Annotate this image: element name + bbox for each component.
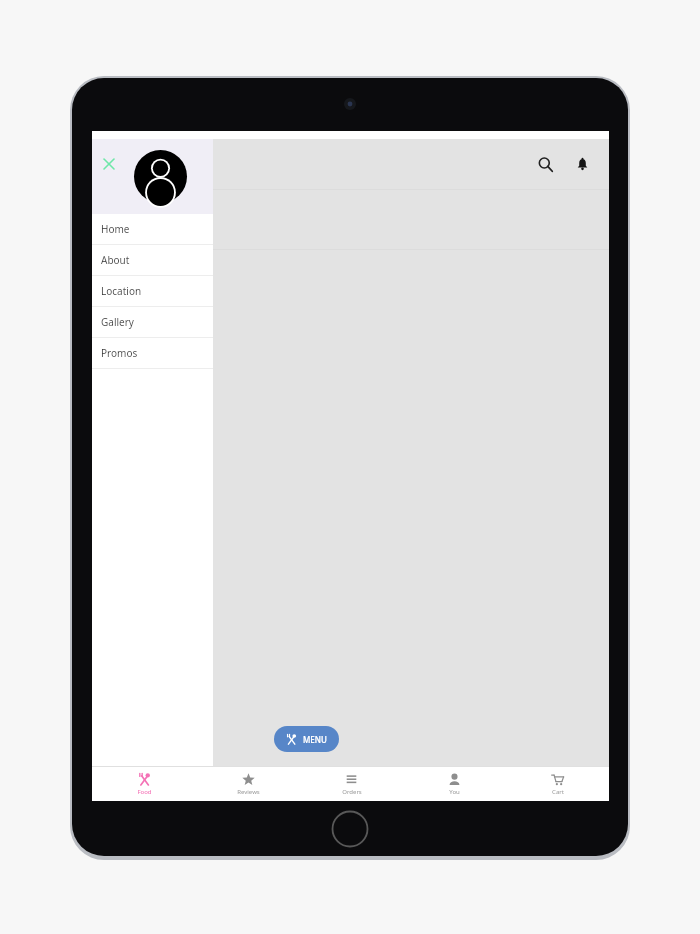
staticText: Cart bbox=[552, 788, 564, 796]
button[interactable]: Close drawer bbox=[98, 153, 120, 175]
button[interactable]: Food bbox=[92, 767, 196, 801]
button[interactable]: About bbox=[92, 245, 213, 276]
button[interactable]: You bbox=[403, 767, 506, 801]
button[interactable]: Reviews bbox=[196, 767, 300, 801]
staticText: You bbox=[449, 788, 460, 796]
button[interactable]: Cart bbox=[506, 767, 609, 801]
staticText: MENU bbox=[303, 734, 327, 745]
button[interactable]: Promos bbox=[92, 338, 213, 369]
staticText: Promos bbox=[101, 346, 138, 360]
button[interactable]: Location bbox=[92, 276, 213, 307]
button[interactable]: Search bbox=[530, 149, 560, 179]
staticText: Reviews bbox=[237, 788, 260, 796]
staticText: Home bbox=[101, 222, 130, 236]
staticText: Orders bbox=[342, 788, 362, 796]
button[interactable]: Home bbox=[92, 214, 213, 245]
button[interactable]: MENU bbox=[274, 726, 339, 752]
button[interactable]: Gallery bbox=[92, 307, 213, 338]
staticText: Location bbox=[101, 284, 142, 298]
staticText: About bbox=[101, 253, 130, 267]
staticText: Food bbox=[137, 788, 152, 796]
button[interactable]: Notifications bbox=[567, 149, 597, 179]
staticText: Gallery bbox=[101, 315, 134, 329]
button[interactable]: Orders bbox=[300, 767, 403, 801]
